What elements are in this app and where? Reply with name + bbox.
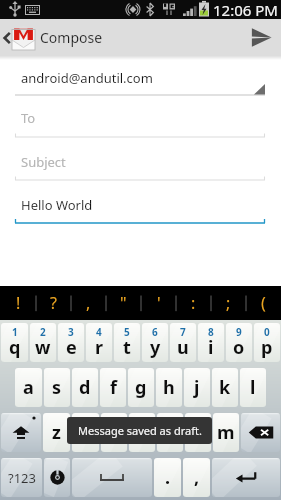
button[interactable]: ; (211, 286, 246, 320)
staticText: 12:06 PM (213, 0, 278, 19)
staticText: ?123 (8, 469, 36, 487)
staticText: h (163, 375, 175, 400)
staticText: 0 (264, 325, 270, 339)
staticText: n (192, 420, 204, 445)
button[interactable]: Shift (1, 413, 41, 452)
button[interactable]: Backspace (241, 413, 280, 452)
staticText: 3 (68, 325, 74, 339)
button[interactable]: v (129, 413, 155, 452)
staticText: Message saved as draft. (78, 423, 202, 438)
staticText: 5 (124, 325, 130, 339)
staticText: l (250, 375, 256, 400)
staticText: c (109, 420, 119, 445)
button[interactable]: 1 (1, 323, 28, 362)
staticText: 4 (96, 325, 102, 339)
staticText: b (164, 420, 176, 445)
staticText: x (80, 420, 91, 445)
button[interactable]: , (183, 458, 210, 497)
staticText: i (208, 335, 214, 360)
staticText: , (86, 292, 91, 314)
button[interactable]: m (213, 413, 239, 452)
button[interactable]: Space (72, 458, 152, 497)
button[interactable]: Send (241, 19, 281, 56)
staticText: f (110, 375, 117, 400)
staticText: ; (226, 292, 231, 314)
button[interactable]: Symbols (1, 458, 42, 497)
button[interactable]: x (72, 413, 99, 452)
button[interactable]: 7 (170, 323, 196, 362)
button[interactable]: 4 (86, 323, 112, 362)
button[interactable]: ( (246, 286, 281, 320)
button[interactable]: j (184, 368, 210, 407)
staticText: g (135, 375, 147, 400)
staticText: 1 (12, 325, 18, 339)
staticText: q (9, 335, 21, 360)
staticText: r (95, 335, 104, 360)
button[interactable]: ? (36, 286, 71, 320)
staticText: 8 (208, 325, 214, 339)
staticText: 7 (180, 325, 186, 339)
staticText: y (150, 335, 161, 360)
staticText: , (194, 465, 200, 490)
button[interactable]: g (128, 368, 154, 407)
button[interactable]: l (240, 368, 266, 407)
staticText: v (137, 420, 148, 445)
button[interactable]: b (157, 413, 183, 452)
button[interactable]: 3 (58, 323, 84, 362)
staticText: s (52, 375, 62, 400)
button[interactable]: Voice input (44, 458, 70, 497)
button[interactable]: k (212, 368, 238, 407)
button[interactable]: 0 (254, 323, 280, 362)
staticText: " (120, 292, 127, 314)
staticText: : (191, 292, 196, 314)
button[interactable]: c (101, 413, 127, 452)
button[interactable]: , (71, 286, 106, 320)
button[interactable]: f (100, 368, 126, 407)
staticText: j (194, 375, 200, 400)
staticText: Subject (21, 153, 66, 171)
staticText: Compose (40, 28, 103, 47)
staticText: w (35, 335, 51, 360)
staticText: 6 (152, 325, 158, 339)
button[interactable]: s (44, 368, 70, 407)
staticText: p (261, 335, 273, 360)
staticText: m (217, 420, 235, 445)
staticText: a (23, 375, 34, 400)
staticText: . (165, 465, 171, 490)
staticText: ( (261, 292, 266, 314)
button[interactable]: ! (0, 286, 36, 320)
button[interactable]: h (156, 368, 182, 407)
button[interactable]: : (176, 286, 211, 320)
button[interactable]: ' (141, 286, 176, 320)
button[interactable]: Hello World (0, 183, 281, 226)
staticText: ' (157, 292, 161, 314)
staticText: t (123, 335, 131, 360)
button[interactable]: 6 (142, 323, 168, 362)
button[interactable]: 5 (114, 323, 140, 362)
staticText: e (66, 335, 77, 360)
staticText: u (177, 335, 189, 360)
button[interactable]: Subject (0, 140, 281, 183)
staticText: d (79, 375, 91, 400)
button[interactable]: android@andutil.com (0, 60, 281, 96)
button[interactable]: . (154, 458, 181, 497)
button[interactable]: Enter (212, 458, 280, 497)
button[interactable]: n (185, 413, 211, 452)
staticText: 2 (40, 325, 46, 339)
button[interactable]: Navigate up (0, 19, 36, 56)
button[interactable]: " (106, 286, 141, 320)
button[interactable]: 9 (226, 323, 252, 362)
staticText: android@andutil.com (21, 69, 153, 87)
button[interactable]: 2 (30, 323, 56, 362)
staticText: z (52, 420, 61, 445)
button[interactable]: 8 (198, 323, 224, 362)
staticText: ! (16, 292, 21, 314)
button[interactable]: To (0, 96, 281, 140)
staticText: o (233, 335, 245, 360)
button[interactable]: z (43, 413, 70, 452)
staticText: ? (50, 292, 57, 314)
staticText: 9 (236, 325, 242, 339)
button[interactable]: d (72, 368, 98, 407)
staticText: Hello World (21, 196, 93, 214)
button[interactable]: a (15, 368, 42, 407)
